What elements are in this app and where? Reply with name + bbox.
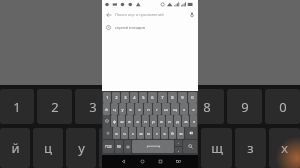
button[interactable]: 9 (178, 92, 187, 103)
staticText: з (183, 107, 185, 112)
button[interactable]: Shift (103, 127, 112, 139)
button[interactable]: 4 (130, 92, 138, 103)
button[interactable]: Back (102, 8, 115, 21)
staticText: я (115, 131, 118, 136)
button[interactable]: х (189, 103, 197, 115)
button[interactable]: Change language (103, 115, 110, 127)
button[interactable]: я (113, 127, 120, 139)
button[interactable]: т (153, 127, 160, 139)
staticText: б (171, 131, 174, 136)
button[interactable]: 0 (188, 92, 197, 103)
button[interactable]: с (129, 127, 136, 139)
staticText: н (147, 107, 150, 112)
staticText: 6 (151, 95, 154, 100)
staticText: с (132, 131, 134, 136)
button[interactable]: 5 (139, 92, 147, 103)
button[interactable]: к (127, 103, 134, 115)
staticText: 9 (241, 98, 249, 116)
button[interactable]: 6 (148, 92, 157, 103)
staticText: 4 (133, 95, 136, 100)
button[interactable]: RU (115, 140, 123, 153)
staticText: з (247, 139, 254, 157)
button[interactable]: Screenshot (169, 155, 187, 168)
button[interactable]: Поиск игр и приложений (115, 8, 185, 21)
staticText: й (105, 107, 108, 112)
staticText: э (193, 119, 195, 124)
button[interactable]: л (166, 115, 173, 127)
staticText: а (136, 119, 139, 124)
staticText: 3 (124, 95, 127, 100)
staticText: ж (184, 119, 188, 124)
button[interactable]: 7 (158, 92, 167, 103)
button[interactable]: Keyboard settings (124, 140, 131, 153)
staticText: 1 (106, 95, 109, 100)
button[interactable]: з (180, 103, 188, 115)
staticText: ч (123, 131, 126, 136)
staticText: р (152, 119, 155, 124)
button[interactable]: Backspace (185, 127, 197, 139)
staticText: у (78, 139, 85, 157)
button[interactable]: ч (121, 127, 128, 139)
button[interactable]: й (103, 103, 110, 115)
button[interactable]: 3 (121, 92, 129, 103)
button[interactable]: Home (133, 155, 151, 168)
button[interactable]: м (137, 127, 144, 139)
button[interactable]: Recent apps (151, 155, 169, 168)
staticText: ш (177, 139, 189, 157)
button[interactable]: Back (114, 155, 133, 168)
button[interactable]: и (145, 127, 152, 139)
staticText: м (139, 131, 143, 136)
button[interactable]: ы (118, 115, 125, 127)
staticText: RU (117, 145, 122, 149)
button[interactable]: д (174, 115, 181, 127)
button[interactable]: 1 (103, 92, 111, 103)
button[interactable]: о (158, 115, 165, 127)
button[interactable]: в (126, 115, 133, 127)
button[interactable]: Search (183, 140, 197, 153)
staticText: в (128, 119, 131, 124)
button[interactable]: п (142, 115, 149, 127)
button[interactable]: б (169, 127, 176, 139)
staticText: ?123 (105, 145, 112, 149)
button[interactable]: ю (177, 127, 184, 139)
button[interactable]: . (175, 140, 182, 146)
staticText: ь (163, 131, 166, 136)
button[interactable]: н (144, 103, 152, 115)
staticText: о (160, 119, 163, 124)
button[interactable]: р (150, 115, 157, 127)
button[interactable]: 8 (168, 92, 177, 103)
staticText: 3 (89, 98, 97, 116)
staticText: 2 (51, 98, 59, 116)
button[interactable]: ф (111, 115, 117, 127)
staticText: ц (44, 139, 52, 157)
button[interactable]: э (190, 115, 197, 127)
button[interactable]: ц (111, 103, 118, 115)
button[interactable]: ?123 (103, 140, 114, 153)
staticText: к (129, 107, 132, 112)
button[interactable]: ж (182, 115, 189, 127)
staticText: . (178, 141, 179, 145)
staticText: к (111, 139, 118, 157)
button[interactable]: щ (171, 103, 179, 115)
button[interactable]: Space (132, 140, 174, 153)
staticText: 7 (161, 95, 164, 100)
staticText: е (138, 107, 141, 112)
button[interactable]: ш (162, 103, 170, 115)
button[interactable]: ь (161, 127, 168, 139)
staticText: , (178, 148, 179, 152)
staticText: 8 (171, 95, 174, 100)
staticText: щ (173, 107, 177, 112)
button[interactable]: сергей погодин (102, 21, 198, 33)
staticText: 1 (13, 98, 21, 116)
button[interactable]: г (153, 103, 161, 115)
button[interactable]: а (134, 115, 141, 127)
button[interactable]: 2 (112, 92, 120, 103)
staticText: ц (113, 107, 116, 112)
button[interactable]: у (119, 103, 126, 115)
button[interactable]: , (175, 147, 182, 153)
button[interactable]: Voice search (185, 8, 198, 21)
staticText: х (281, 139, 288, 157)
button[interactable]: е (135, 103, 143, 115)
staticText: 2 (115, 95, 118, 100)
staticText: 8 (203, 98, 211, 116)
